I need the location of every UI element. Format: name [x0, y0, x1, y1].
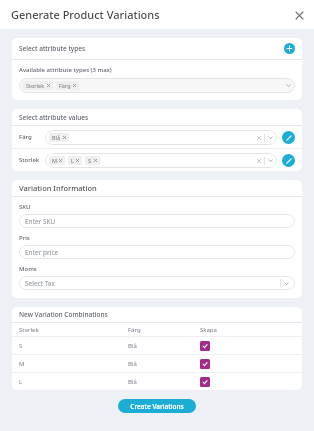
staticText: Blå	[128, 360, 200, 368]
staticText: Storlek	[19, 326, 128, 334]
staticText: Variation Information	[19, 183, 97, 193]
other: Create S	[200, 341, 210, 351]
button[interactable]: Enter SKU	[19, 214, 295, 228]
staticText: Blå	[128, 342, 200, 350]
staticText: Enter price	[25, 248, 59, 257]
staticText: Enter SKU	[25, 217, 56, 226]
staticText: Select attribute values	[19, 113, 89, 122]
staticText: Blå	[128, 378, 200, 386]
button[interactable]: Add attribute type	[284, 43, 295, 54]
button[interactable]: M	[19, 355, 295, 372]
button[interactable]: Edit Färg	[282, 131, 295, 144]
staticText: SKU	[19, 203, 31, 211]
button[interactable]: M	[45, 153, 277, 168]
button[interactable]: Enter price	[19, 245, 295, 259]
staticText: L	[19, 378, 128, 386]
button[interactable]: Blå	[45, 130, 277, 145]
staticText: Select attribute types	[19, 44, 86, 53]
button[interactable]: Close	[290, 6, 308, 24]
staticText: Available attribute types (3 max)	[19, 66, 112, 74]
staticText: Pris	[19, 234, 30, 242]
button[interactable]: S	[19, 337, 295, 354]
staticText: Storlek	[26, 82, 45, 89]
staticText: M	[52, 157, 57, 164]
staticText: Färg	[19, 133, 45, 141]
other: Create L	[200, 377, 210, 387]
button[interactable]: Storlek	[19, 78, 295, 93]
staticText: Generate Product Variations	[11, 7, 160, 22]
staticText: Create Variations	[130, 402, 184, 411]
button[interactable]: Select Tax	[19, 276, 295, 290]
button[interactable]: Edit Storlek	[282, 154, 295, 167]
staticText: S	[19, 342, 128, 350]
other: Create M	[200, 359, 210, 369]
staticText: Färg	[59, 82, 71, 89]
button[interactable]: L	[19, 373, 295, 390]
staticText: Select Tax	[25, 279, 55, 288]
staticText: Moms	[19, 265, 37, 273]
staticText: Storlek	[19, 156, 45, 164]
staticText: L	[71, 157, 74, 164]
staticText: New Variation Combinations	[19, 310, 108, 319]
staticText: M	[19, 360, 128, 368]
staticText: Blå	[52, 134, 61, 141]
staticText: Skapa	[200, 326, 217, 334]
staticText: Färg	[128, 326, 200, 334]
button[interactable]: Create Variations	[118, 399, 196, 413]
staticText: S	[88, 157, 92, 164]
